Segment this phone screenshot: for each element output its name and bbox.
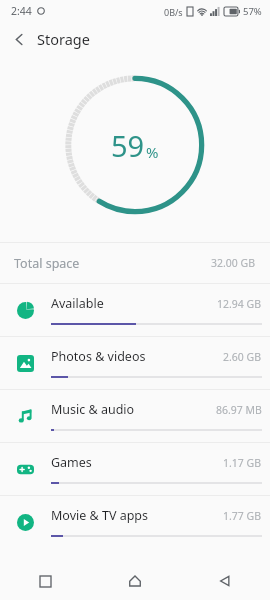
button[interactable]: Photos & videos xyxy=(0,337,270,389)
staticText: 32.00 GB xyxy=(211,256,256,270)
button[interactable]: Back xyxy=(6,26,32,52)
staticText: 0B/s xyxy=(164,6,183,18)
staticText: 12.94 GB xyxy=(217,297,262,311)
staticText: % xyxy=(146,142,159,162)
staticText: 1.17 GB xyxy=(223,456,262,470)
button[interactable]: Games xyxy=(0,443,270,495)
staticText: 2.60 GB xyxy=(223,350,262,364)
button[interactable]: Movie & TV apps xyxy=(0,496,270,548)
staticText: 57% xyxy=(243,5,262,18)
staticText: 1.77 GB xyxy=(223,509,262,523)
button[interactable]: Recents xyxy=(0,562,90,600)
button[interactable]: Music & audio xyxy=(0,390,270,442)
staticText: Total space xyxy=(14,255,80,272)
staticText: 59 xyxy=(111,126,145,165)
staticText: Movie & TV apps xyxy=(51,507,149,524)
button[interactable]: Available xyxy=(0,284,270,336)
staticText: Music & audio xyxy=(51,401,135,418)
button[interactable]: Total space xyxy=(0,243,270,283)
staticText: 2:44 xyxy=(11,4,32,18)
staticText: Available xyxy=(51,295,104,312)
button[interactable]: Home xyxy=(90,562,180,600)
staticText: Photos & videos xyxy=(51,348,146,365)
staticText: 86.97 MB xyxy=(216,403,262,417)
button[interactable]: Back xyxy=(180,562,270,600)
staticText: Storage xyxy=(37,29,90,49)
staticText: Games xyxy=(51,454,92,471)
